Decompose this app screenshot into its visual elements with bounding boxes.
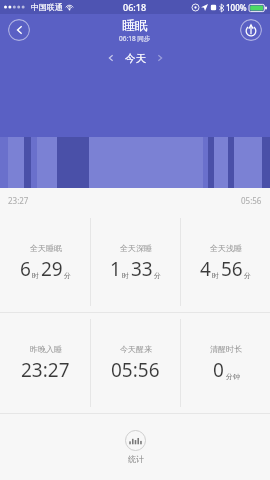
- staticText: 29: [41, 256, 63, 282]
- staticText: 昨晚入睡: [30, 344, 62, 354]
- staticText: 时: [122, 271, 129, 280]
- button[interactable]: 今天: [125, 52, 146, 65]
- button[interactable]: 全天浅睡: [181, 212, 270, 312]
- staticText: 1: [110, 256, 121, 282]
- staticText: 6: [20, 256, 31, 282]
- staticText: 分钟: [226, 372, 240, 381]
- staticText: 33: [131, 256, 153, 282]
- button[interactable]: Back: [8, 19, 30, 41]
- staticText: 分: [244, 271, 251, 280]
- button[interactable]: 全天睡眠: [0, 212, 90, 312]
- button[interactable]: 今天醒来: [91, 313, 180, 413]
- staticText: 100%: [226, 2, 247, 13]
- staticText: 清醒时长: [210, 344, 242, 354]
- button[interactable]: 统计: [117, 428, 154, 466]
- button[interactable]: 昨晚入睡: [0, 313, 90, 413]
- staticText: 睡眠: [122, 17, 148, 33]
- staticText: 今天醒来: [120, 344, 152, 354]
- button[interactable]: 清醒时长: [181, 313, 270, 413]
- button[interactable]: Previous day: [101, 49, 119, 67]
- staticText: 0: [213, 357, 224, 383]
- staticText: 统计: [128, 454, 144, 464]
- staticText: 23:27: [21, 357, 70, 383]
- staticText: 23:27: [8, 195, 29, 206]
- staticText: 全天睡眠: [30, 243, 62, 253]
- staticText: 中国联通: [31, 2, 63, 12]
- staticText: 时: [212, 271, 219, 280]
- staticText: 全天深睡: [120, 243, 152, 253]
- button[interactable]: 全天深睡: [91, 212, 180, 312]
- staticText: 05:56: [111, 357, 160, 383]
- staticText: 分: [154, 271, 161, 280]
- button[interactable]: Next day: [152, 49, 170, 67]
- staticText: 06:18 同步: [119, 34, 151, 43]
- staticText: 06:18: [123, 1, 147, 13]
- staticText: 05:56: [241, 195, 262, 206]
- staticText: 时: [32, 271, 39, 280]
- staticText: 4: [200, 256, 211, 282]
- staticText: 56: [221, 256, 243, 282]
- staticText: 分: [64, 271, 71, 280]
- staticText: 全天浅睡: [210, 243, 242, 253]
- button[interactable]: Sync: [240, 19, 262, 41]
